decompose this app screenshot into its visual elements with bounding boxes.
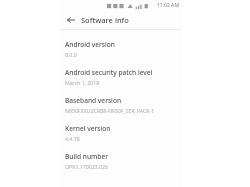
staticText: OPR1.170623.026 [65, 163, 108, 170]
staticText: Baseband version [65, 96, 122, 105]
staticText: N950FXXU2CRB8-N950F_SER_PACK-1 [65, 107, 155, 114]
staticText: 8.0.0 [65, 51, 77, 58]
staticText: 4.4.78 [65, 135, 80, 142]
staticText: Android security patch level [65, 68, 153, 77]
staticText: Android version [65, 40, 116, 49]
button[interactable]: Back [64, 13, 78, 27]
button[interactable]: Build number [60, 147, 182, 175]
staticText: March 1, 2018 [65, 79, 100, 86]
staticText: Kernel version [65, 124, 111, 133]
button[interactable]: Baseband version [60, 91, 182, 119]
button[interactable]: Android security patch level [60, 63, 182, 91]
button[interactable]: Android version [60, 35, 182, 63]
staticText: Software info [81, 15, 129, 25]
staticText: 11:02 AM [157, 2, 179, 9]
staticText: Build number [65, 152, 108, 161]
button[interactable]: Kernel version [60, 119, 182, 147]
